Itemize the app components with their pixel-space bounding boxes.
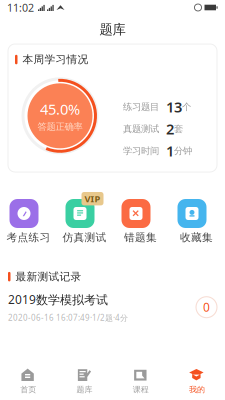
staticText: 课程 bbox=[133, 385, 149, 394]
staticText: 真题测试 bbox=[123, 123, 159, 135]
staticText: 最新测试记录 bbox=[15, 270, 81, 283]
staticText: 首页 bbox=[20, 385, 36, 394]
staticText: 11:02 bbox=[7, 0, 34, 15]
staticText: 仿真测试 bbox=[62, 231, 106, 244]
button[interactable]: 首页 bbox=[0, 363, 56, 399]
staticText: 个 bbox=[182, 101, 191, 113]
staticText: 题库 bbox=[99, 21, 125, 38]
staticText: 答题正确率 bbox=[37, 121, 82, 132]
staticText: 题库 bbox=[76, 385, 92, 394]
button[interactable]: 考点练习 bbox=[4, 192, 52, 244]
staticText: 0 bbox=[203, 299, 210, 315]
staticText: 2020-06-16 16:07:49·1/2题·4分 bbox=[8, 312, 128, 323]
staticText: 本周学习情况 bbox=[22, 53, 88, 66]
staticText: 分钟 bbox=[174, 145, 192, 157]
staticText: 错题集 bbox=[124, 231, 157, 244]
staticText: 收藏集 bbox=[180, 231, 213, 244]
button[interactable]: 2019数学模拟考试 bbox=[8, 287, 217, 327]
button[interactable]: 题库 bbox=[56, 363, 112, 399]
staticText: 2019数学模拟考试 bbox=[8, 291, 108, 307]
button[interactable]: VIP bbox=[60, 192, 108, 244]
staticText: 2 bbox=[166, 119, 174, 139]
staticText: 练习题目 bbox=[123, 101, 159, 113]
button[interactable]: 我的 bbox=[169, 363, 225, 399]
staticText: 45.0% bbox=[40, 99, 80, 119]
staticText: 学习时间 bbox=[123, 145, 159, 157]
staticText: 我的 bbox=[189, 385, 205, 394]
staticText: 考点练习 bbox=[6, 231, 50, 244]
button[interactable]: 错题集 bbox=[116, 192, 164, 244]
staticText: 1 bbox=[166, 141, 174, 161]
staticText: VIP bbox=[84, 192, 100, 205]
staticText: 套 bbox=[174, 123, 183, 135]
staticText: 13 bbox=[166, 97, 182, 117]
button[interactable]: 收藏集 bbox=[172, 192, 220, 244]
button[interactable]: 课程 bbox=[112, 363, 169, 399]
